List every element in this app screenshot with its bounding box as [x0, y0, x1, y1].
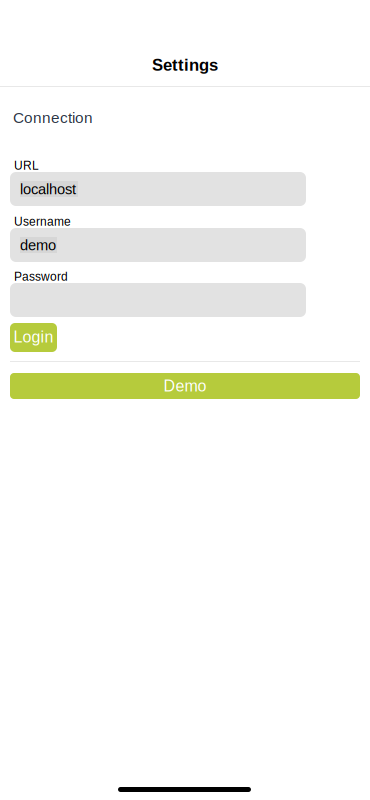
staticText: Password	[14, 270, 68, 283]
button[interactable]: Login	[10, 323, 57, 352]
staticText: Connection	[13, 109, 93, 126]
staticText: Settings	[152, 56, 218, 74]
button[interactable]: URL	[10, 172, 306, 206]
staticText: Demo	[163, 377, 206, 395]
staticText: Login	[13, 328, 53, 346]
button[interactable]: Username	[10, 228, 306, 262]
staticText: URL	[14, 159, 39, 172]
staticText: Username	[14, 215, 71, 228]
staticText: demo	[20, 237, 56, 253]
staticText: localhost	[20, 181, 76, 197]
button[interactable]: Demo	[10, 373, 360, 399]
